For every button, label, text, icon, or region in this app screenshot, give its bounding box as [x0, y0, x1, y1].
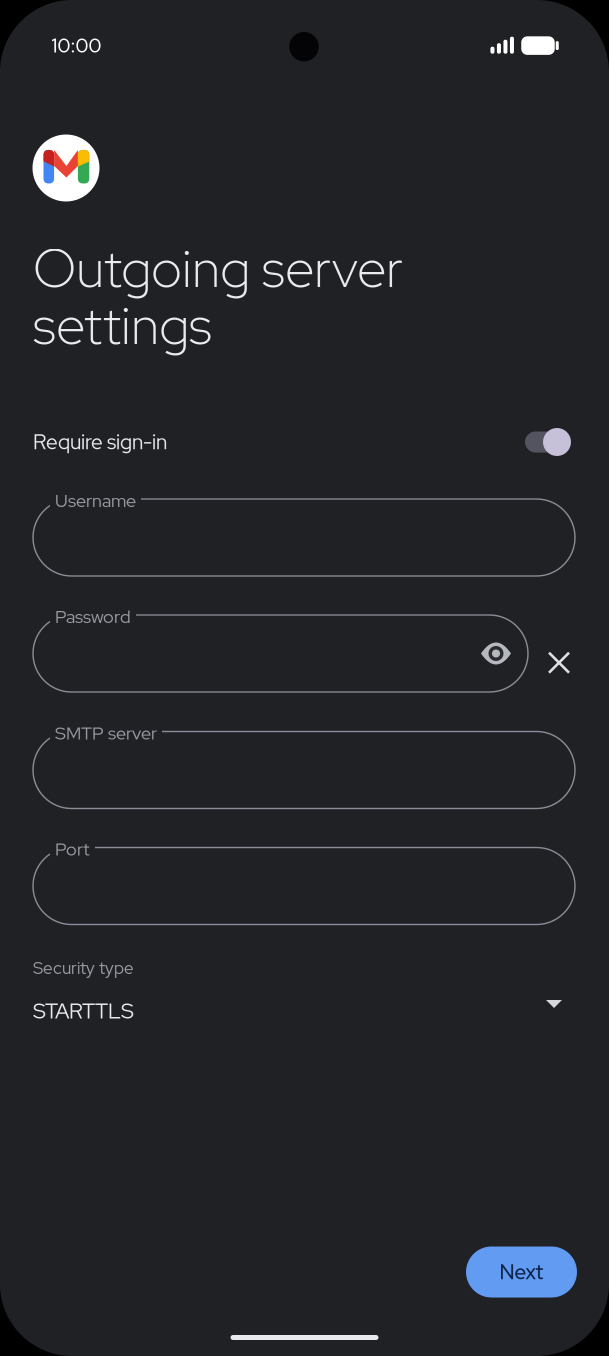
staticText: Outgoing server — [33, 233, 403, 303]
button[interactable]: Clear password — [539, 643, 579, 683]
staticText: settings — [33, 290, 212, 360]
staticText: Port — [55, 837, 90, 861]
staticText: Require sign-in — [33, 428, 167, 456]
staticText: 10:00 — [51, 33, 101, 58]
button[interactable]: Choose security type — [537, 987, 571, 1021]
staticText: Next — [499, 1258, 543, 1286]
button[interactable]: STARTTLS — [33, 996, 333, 1026]
staticText: Security type — [33, 957, 134, 979]
button[interactable]: Next — [466, 1246, 577, 1297]
staticText: STARTTLS — [33, 997, 134, 1025]
button[interactable]: Require sign-in — [525, 427, 571, 457]
staticText: SMTP server — [55, 721, 157, 745]
staticText: Username — [55, 489, 136, 512]
staticText: Password — [55, 605, 131, 628]
